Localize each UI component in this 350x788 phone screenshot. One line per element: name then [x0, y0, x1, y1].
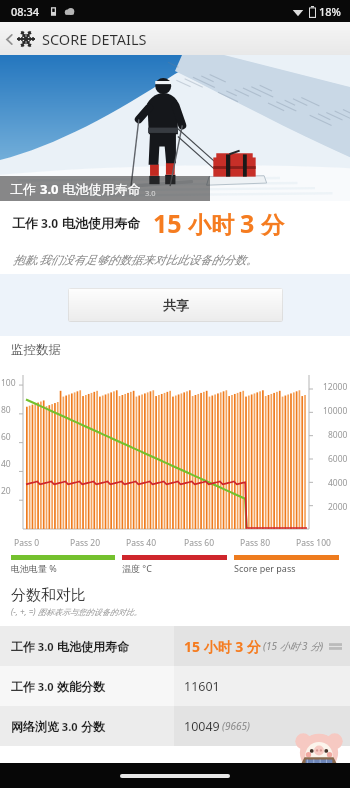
staticText: 20: [1, 485, 11, 497]
staticText: Pass 20: [70, 537, 100, 549]
staticText: 11601: [184, 678, 220, 695]
staticText: 分: [255, 208, 284, 239]
staticText: 40: [1, 458, 11, 470]
staticText: 电池电量 %: [11, 562, 57, 574]
staticText: Pass 0: [14, 537, 40, 549]
staticText: 温度 °C: [122, 562, 152, 574]
staticText: SCORE DETAILS: [42, 29, 147, 49]
staticText: Pass 60: [184, 537, 214, 549]
staticText: 3.0: [35, 639, 57, 654]
staticText: 抱歉,我们没有足够的数据来对比此设备的分数。: [13, 252, 258, 268]
staticText: Pass 40: [126, 537, 156, 549]
staticText: 工作: [12, 215, 38, 231]
staticText: 监控数据: [11, 342, 61, 358]
staticText: 分数: [81, 719, 105, 734]
staticText: 工作: [11, 679, 35, 694]
staticText: 2000: [328, 501, 348, 513]
staticText: 工作: [10, 180, 40, 198]
staticText: 3.0: [59, 719, 81, 734]
staticText: (15 小时 3 分): [263, 639, 324, 653]
staticText: 15: [153, 206, 182, 240]
staticText: 电池使用寿命: [57, 639, 129, 654]
staticText: 分数和对比: [11, 586, 86, 605]
button[interactable]: 工作: [0, 626, 350, 666]
staticText: 4000: [328, 477, 348, 489]
button[interactable]: 网络浏览: [0, 706, 350, 746]
staticText: 网络浏览: [11, 719, 59, 734]
staticText: 10049: [184, 718, 220, 735]
staticText: Pass 80: [240, 537, 270, 549]
staticText: 80: [1, 404, 11, 416]
staticText: 3: [240, 206, 255, 240]
button[interactable]: 工作: [0, 666, 350, 706]
staticText: 15 小时 3 分: [184, 637, 261, 656]
staticText: 工作: [11, 639, 35, 654]
button[interactable]: Back: [0, 22, 350, 55]
staticText: 100: [1, 377, 16, 389]
staticText: 共享: [163, 297, 189, 313]
staticText: 8000: [328, 429, 348, 441]
other: Equal: [328, 639, 343, 654]
staticText: 小时: [182, 208, 240, 239]
staticText: 电池使用寿命: [62, 215, 140, 231]
other: Back: [3, 33, 16, 46]
staticText: (-, +, =) 图标表示与您的设备的对比。: [11, 606, 142, 617]
staticText: 效能分数: [57, 679, 105, 694]
staticText: 3.0: [40, 180, 59, 198]
staticText: Pass 100: [296, 537, 331, 549]
staticText: 10000: [323, 405, 348, 417]
staticText: (9665): [222, 719, 250, 733]
staticText: 3.0: [38, 215, 62, 231]
staticText: 电池使用寿命: [59, 180, 141, 198]
staticText: 6000: [328, 453, 348, 465]
staticText: 3.0: [141, 188, 156, 198]
staticText: Score per pass: [234, 562, 296, 574]
button[interactable]: 共享: [68, 288, 283, 322]
staticText: 3.0: [35, 679, 57, 694]
staticText: 12000: [323, 381, 348, 393]
staticText: 08:34: [11, 4, 40, 19]
staticText: 18%: [319, 4, 341, 19]
staticText: 60: [1, 431, 11, 443]
